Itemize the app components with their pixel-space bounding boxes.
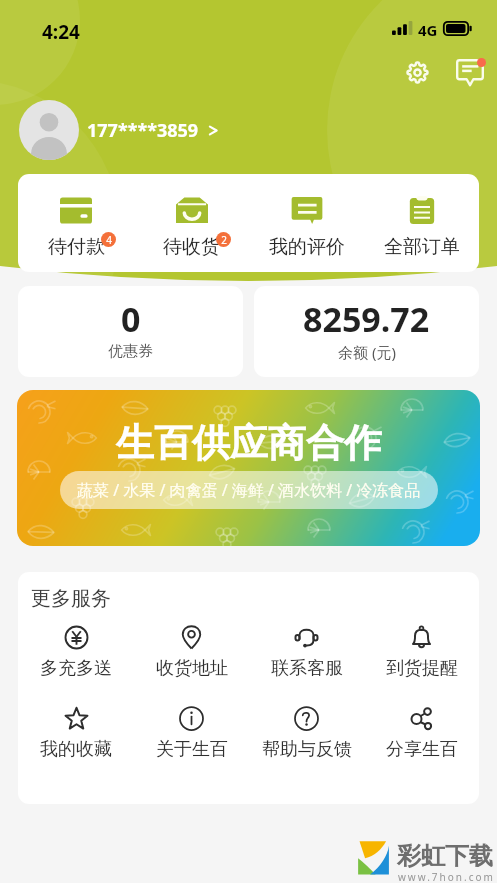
- staticText: 我的收藏: [40, 738, 112, 761]
- staticText: 全部订单: [384, 235, 460, 259]
- staticText: 优惠券: [108, 342, 153, 361]
- staticText: 4:24: [42, 19, 80, 45]
- staticText: 4: [106, 233, 112, 247]
- button[interactable]: 我的评价: [249, 174, 364, 272]
- button[interactable]: 177****3859: [19, 99, 218, 161]
- button[interactable]: 待付款: [18, 174, 134, 272]
- staticText: 联系客服: [271, 657, 343, 680]
- staticText: 8259.72: [303, 296, 430, 342]
- button[interactable]: 关于生百: [134, 706, 249, 761]
- button[interactable]: Messages: [450, 52, 490, 92]
- staticText: 余额 (元): [338, 342, 396, 362]
- button[interactable]: 0: [18, 286, 243, 377]
- button[interactable]: 收货地址: [134, 625, 249, 680]
- staticText: 收货地址: [156, 657, 228, 680]
- staticText: 多充多送: [40, 657, 112, 680]
- staticText: 关于生百: [156, 738, 228, 761]
- button[interactable]: 待收货: [134, 174, 249, 272]
- button[interactable]: 多充多送: [18, 625, 134, 680]
- button[interactable]: 分享生百: [364, 706, 479, 761]
- staticText: 分享生百: [386, 738, 458, 761]
- staticText: 待收货: [163, 235, 220, 259]
- staticText: 0: [121, 296, 141, 342]
- staticText: 帮助与反馈: [262, 738, 352, 761]
- button[interactable]: 全部订单: [364, 174, 479, 272]
- staticText: 彩虹下载: [397, 841, 493, 871]
- button[interactable]: 联系客服: [249, 625, 364, 680]
- staticText: 2: [221, 233, 227, 247]
- button[interactable]: 帮助与反馈: [249, 706, 364, 761]
- staticText: 待付款: [48, 235, 105, 259]
- staticText: 更多服务: [31, 586, 111, 611]
- button[interactable]: 我的收藏: [18, 706, 134, 761]
- staticText: 我的评价: [269, 235, 345, 259]
- staticText: www.7hon.com: [398, 870, 495, 883]
- button[interactable]: 8259.72: [254, 286, 479, 377]
- staticText: 蔬菜 / 水果 / 肉禽蛋 / 海鲜 / 酒水饮料 / 冷冻食品: [77, 479, 421, 501]
- staticText: 到货提醒: [386, 657, 458, 680]
- button[interactable]: Settings: [397, 52, 437, 92]
- button[interactable]: 到货提醒: [364, 625, 479, 680]
- staticText: 4G: [418, 20, 438, 40]
- staticText: 生百供应商合作: [116, 419, 382, 467]
- staticText: 177****3859: [87, 118, 199, 143]
- button[interactable]: 生百供应商合作: [17, 390, 480, 546]
